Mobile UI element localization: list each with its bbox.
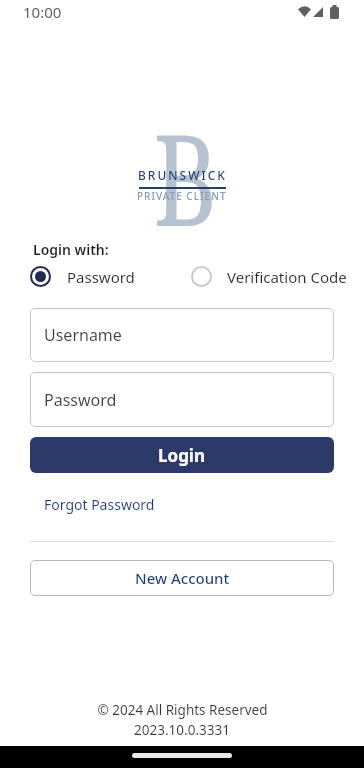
staticText: © 2024 All Rights Reserved (97, 701, 268, 719)
staticText: B (153, 91, 218, 263)
staticText: Password (44, 389, 117, 411)
staticText: Username (44, 324, 122, 346)
button[interactable]: Login (30, 437, 334, 473)
staticText: 10:00 (23, 2, 62, 22)
staticText: Password (67, 267, 135, 287)
staticText: 2023.10.0.3331 (134, 721, 230, 739)
staticText: New Account (135, 568, 230, 588)
button[interactable]: Forgot Password (44, 495, 155, 514)
button[interactable]: Password (30, 266, 135, 287)
button[interactable]: Verification Code (191, 266, 347, 287)
staticText: Login (158, 444, 206, 467)
button[interactable]: Password (30, 372, 334, 427)
staticText: Forgot Password (44, 495, 155, 514)
staticText: Verification Code (227, 267, 347, 287)
staticText: PRIVATE CLIENT (137, 189, 227, 203)
staticText: BRUNSWICK (138, 167, 227, 183)
button[interactable]: New Account (30, 560, 334, 596)
staticText: Login with: (33, 240, 109, 259)
button[interactable]: Username (30, 308, 334, 362)
